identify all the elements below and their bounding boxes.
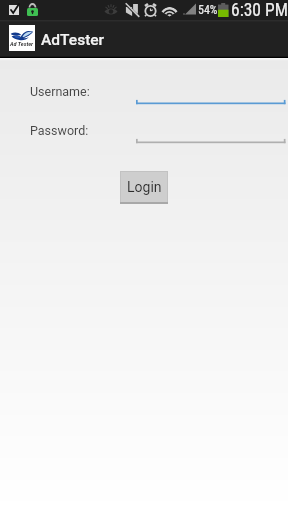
button[interactable]: AdTester logo bbox=[9, 25, 35, 51]
staticText: Password: bbox=[30, 123, 89, 138]
staticText: AdTester bbox=[41, 31, 105, 49]
button[interactable]: Login bbox=[120, 171, 168, 204]
staticText: 54% bbox=[198, 3, 218, 17]
staticText: 6:30 PM bbox=[231, 0, 288, 20]
staticText: Login bbox=[127, 179, 162, 195]
staticText: Ad Tester bbox=[10, 40, 34, 47]
button[interactable]: Username field bbox=[136, 88, 286, 104]
staticText: Username: bbox=[30, 84, 90, 99]
button[interactable]: Password field bbox=[136, 127, 286, 143]
